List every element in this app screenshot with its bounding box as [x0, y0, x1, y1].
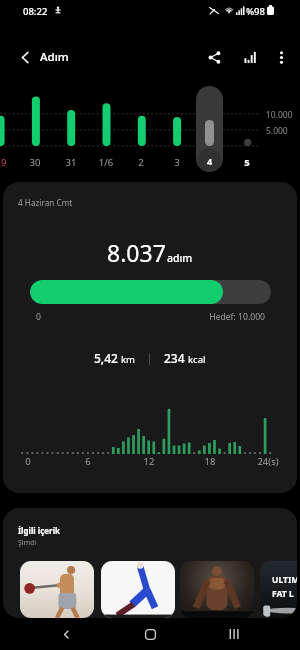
staticText: 24(s)	[253, 455, 283, 468]
button[interactable]: More options	[262, 38, 300, 76]
staticText: 5.000	[266, 125, 288, 137]
staticText: Adım	[40, 49, 69, 65]
button[interactable]: Related content 2	[101, 561, 175, 618]
staticText: 4	[196, 155, 223, 167]
button[interactable]: Back	[6, 38, 44, 76]
staticText: kcal	[188, 353, 206, 366]
button[interactable]: Related content 4	[260, 561, 297, 618]
staticText: 0	[36, 311, 41, 323]
staticText: 31	[57, 156, 85, 169]
staticText: İlgili içerik	[18, 525, 61, 536]
staticText: 5,42	[94, 350, 118, 366]
button[interactable]: Related content 3	[180, 561, 254, 618]
staticText: 30	[21, 156, 49, 169]
staticText: 3	[163, 156, 191, 169]
staticText: 10.000	[266, 109, 293, 121]
staticText: 18	[200, 455, 220, 468]
staticText: 8.037	[107, 237, 166, 268]
button[interactable]: Related content 1	[20, 561, 94, 618]
staticText: 4 Haziran Cmt	[18, 197, 73, 208]
staticText: FAT L	[272, 588, 294, 600]
staticText: Hedef: 10.000	[199, 311, 265, 323]
staticText: 12	[139, 455, 159, 468]
button[interactable]: Statistics	[231, 38, 269, 76]
staticText: ULTIM	[272, 574, 297, 586]
button[interactable]: Back	[50, 618, 82, 650]
button[interactable]: Selected day 4	[196, 86, 223, 172]
staticText: 1/6	[92, 156, 120, 169]
staticText: 2	[127, 156, 155, 169]
staticText: Şimdi	[18, 538, 37, 548]
staticText: 234	[164, 350, 185, 366]
button[interactable]: Recents	[218, 618, 250, 650]
button[interactable]: Share	[195, 38, 233, 76]
staticText: %98	[246, 5, 265, 18]
staticText: km	[121, 353, 135, 366]
staticText: 0	[18, 455, 38, 468]
staticText: 08:22	[23, 5, 48, 18]
button[interactable]: Home	[134, 618, 166, 650]
staticText: 5	[233, 156, 261, 169]
staticText: adım	[167, 251, 193, 265]
staticText: 29	[0, 156, 15, 169]
staticText: 6	[78, 455, 98, 468]
